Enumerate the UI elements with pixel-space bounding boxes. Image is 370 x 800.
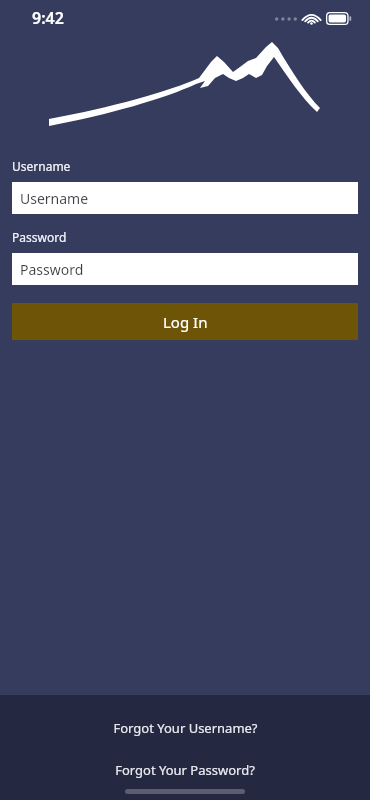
button[interactable]: Log In bbox=[12, 303, 358, 340]
staticText: Log In bbox=[163, 312, 208, 332]
staticText: Username bbox=[12, 158, 71, 174]
staticText: Username bbox=[20, 189, 89, 208]
staticText: Forgot Your Username? bbox=[113, 719, 258, 737]
staticText: Password bbox=[20, 260, 84, 279]
staticText: Password bbox=[12, 229, 67, 245]
button[interactable]: Forgot Your Username? bbox=[0, 717, 370, 739]
button[interactable]: Forgot Your Password? bbox=[0, 759, 370, 781]
staticText: Forgot Your Password? bbox=[115, 761, 255, 779]
staticText: 9:42 bbox=[32, 7, 64, 29]
button[interactable]: Username bbox=[12, 182, 358, 214]
button[interactable]: Password bbox=[12, 253, 358, 285]
